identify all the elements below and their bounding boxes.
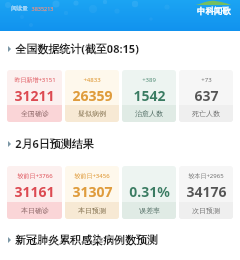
button[interactable]: +73 — [179, 70, 233, 122]
staticText: 0.31% — [129, 182, 170, 201]
staticText: 较本日+2965 — [188, 172, 224, 180]
staticText: 阅读量 — [11, 5, 28, 12]
staticText: +73 — [201, 76, 212, 84]
staticText: 误差率 — [139, 206, 160, 215]
button[interactable]: 新冠肺炎累积感染病例数预测 — [8, 233, 240, 247]
staticText: 26359 — [72, 86, 113, 105]
staticText: 中科闻歌 — [197, 6, 231, 17]
staticText: 31307 — [72, 182, 113, 201]
button[interactable]: +389 — [122, 70, 176, 122]
staticText: +389 — [142, 76, 156, 84]
staticText: 新冠肺炎累积感染病例数预测 — [15, 233, 158, 247]
staticText: 昨日新增+3151 — [14, 76, 56, 84]
staticText: 死亡人数 — [192, 109, 220, 118]
staticText: 31211 — [14, 86, 55, 105]
button[interactable]: 较前日+3766 — [7, 166, 62, 219]
staticText: 31161 — [14, 182, 55, 201]
button[interactable]: 较前日+3456 — [65, 166, 119, 219]
button[interactable]: 全国数据统计(截至08:15) — [8, 41, 240, 56]
staticText: 1542 — [133, 86, 166, 105]
staticText: 次日预测 — [192, 206, 220, 215]
staticText: 本日预测 — [78, 206, 106, 215]
button[interactable]: 中科闻歌 — [196, 0, 231, 17]
staticText: 较前日+3456 — [74, 172, 110, 180]
staticText: 治愈人数 — [135, 109, 163, 118]
staticText: 34176 — [186, 182, 227, 201]
staticText: 疑似病例 — [78, 109, 106, 118]
button[interactable]: 2月6日预测结果 — [8, 136, 240, 151]
staticText: 全国数据统计(截至08:15) — [15, 41, 139, 56]
button[interactable]: 昨日新增+3151 — [7, 70, 62, 122]
staticText: 3835213 — [31, 5, 54, 12]
staticText: 2月6日预测结果 — [15, 136, 94, 151]
staticText: 本日确诊 — [21, 206, 49, 215]
button[interactable]: +4833 — [65, 70, 119, 122]
staticText: 较前日+3766 — [17, 172, 53, 180]
button[interactable]: 较本日+2965 — [179, 166, 233, 219]
button[interactable]: 0.31% — [122, 166, 176, 219]
staticText: 637 — [194, 86, 219, 105]
staticText: +4833 — [83, 76, 101, 84]
staticText: 全国确诊 — [21, 109, 49, 118]
